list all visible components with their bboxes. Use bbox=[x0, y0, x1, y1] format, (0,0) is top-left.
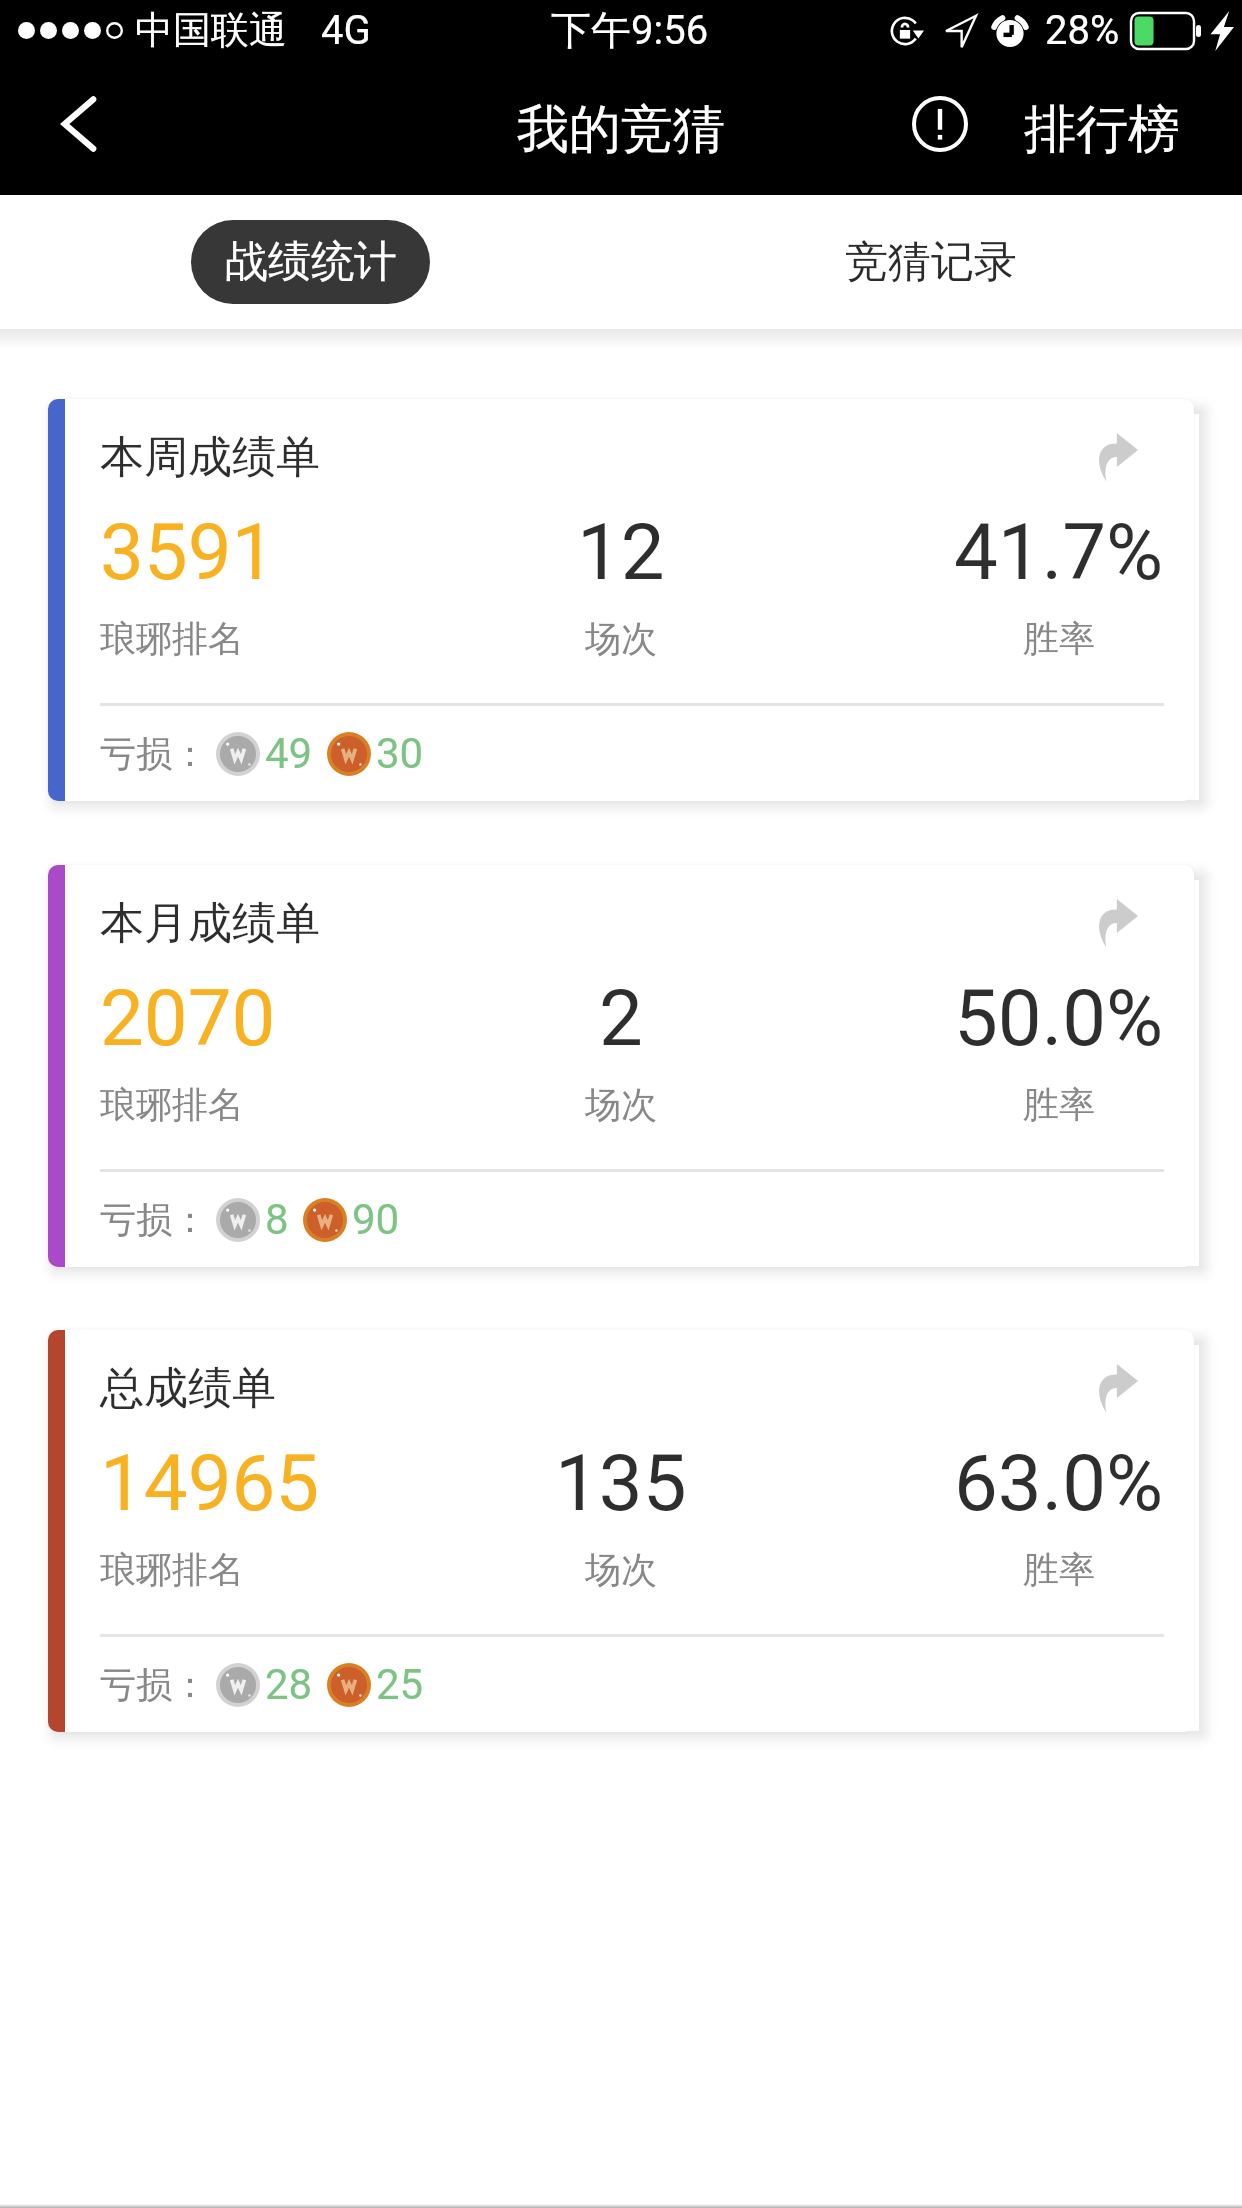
staticText: 总成绩单 bbox=[100, 1361, 276, 1416]
button[interactable]: 本周成绩单 bbox=[48, 399, 1194, 801]
staticText: 2070 bbox=[100, 973, 276, 1064]
staticText: 28 bbox=[265, 1660, 313, 1709]
button[interactable]: Info bbox=[908, 62, 1242, 195]
staticText: 本周成绩单 bbox=[100, 430, 320, 485]
staticText: 63.0% bbox=[954, 1438, 1164, 1529]
staticText: 胜率 bbox=[1023, 616, 1095, 661]
button[interactable]: 竞猜记录 bbox=[811, 220, 1050, 304]
staticText: 41.7% bbox=[954, 507, 1164, 598]
staticText: 亏损： bbox=[100, 1197, 208, 1242]
staticText: 2 bbox=[599, 973, 643, 1064]
button[interactable]: Back bbox=[0, 62, 150, 195]
staticText: 场次 bbox=[585, 1547, 657, 1592]
staticText: 本月成绩单 bbox=[100, 896, 320, 951]
staticText: 4G bbox=[321, 7, 371, 54]
staticText: 琅琊排名 bbox=[100, 1547, 244, 1592]
staticText: 我的竞猜 bbox=[517, 97, 725, 163]
staticText: 竞猜记录 bbox=[845, 235, 1017, 289]
staticText: 14965 bbox=[100, 1438, 320, 1529]
staticText: 下午9:56 bbox=[551, 5, 709, 55]
staticText: 亏损： bbox=[100, 731, 208, 776]
other: Info bbox=[912, 96, 968, 152]
staticText: 琅琊排名 bbox=[100, 616, 244, 661]
staticText: 排行榜 bbox=[1024, 97, 1180, 163]
button[interactable]: Share bbox=[1088, 895, 1144, 951]
button[interactable]: Share bbox=[1088, 429, 1144, 485]
button[interactable]: 本月成绩单 bbox=[48, 865, 1194, 1267]
staticText: 亏损： bbox=[100, 1662, 208, 1707]
staticText: 中国联通 bbox=[135, 6, 287, 54]
staticText: 49 bbox=[265, 729, 313, 778]
staticText: 琅琊排名 bbox=[100, 1082, 244, 1127]
staticText: 胜率 bbox=[1023, 1082, 1095, 1127]
staticText: 8 bbox=[265, 1195, 289, 1244]
staticText: 90 bbox=[352, 1195, 400, 1244]
staticText: 胜率 bbox=[1023, 1547, 1095, 1592]
staticText: 28% bbox=[1045, 7, 1120, 54]
button[interactable]: Share bbox=[1088, 1360, 1144, 1416]
staticText: 12 bbox=[577, 507, 665, 598]
staticText: 135 bbox=[555, 1438, 687, 1529]
staticText: 场次 bbox=[585, 616, 657, 661]
staticText: 3591 bbox=[100, 507, 276, 598]
staticText: 30 bbox=[376, 729, 424, 778]
staticText: 战绩统计 bbox=[225, 235, 397, 289]
staticText: 场次 bbox=[585, 1082, 657, 1127]
staticText: 25 bbox=[376, 1660, 424, 1709]
button[interactable]: 战绩统计 bbox=[191, 220, 430, 304]
staticText: 50.0% bbox=[954, 973, 1164, 1064]
button[interactable]: 总成绩单 bbox=[48, 1330, 1194, 1732]
